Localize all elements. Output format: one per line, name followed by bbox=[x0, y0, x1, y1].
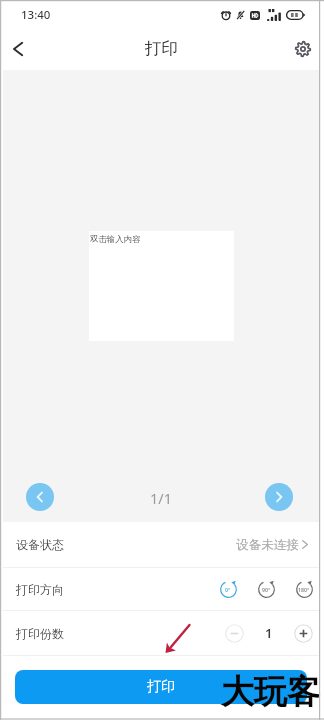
staticText: 大玩客 bbox=[221, 671, 320, 713]
button[interactable]: Rotate 90° bbox=[256, 579, 276, 599]
button[interactable]: 打印份数 bbox=[3, 611, 319, 655]
button[interactable]: Rotate 180° bbox=[294, 579, 314, 599]
button[interactable]: 打印方向 bbox=[3, 568, 319, 610]
staticText: 双击输入内容 bbox=[90, 234, 141, 245]
staticText: 打印份数 bbox=[16, 626, 64, 641]
staticText: 设备状态 bbox=[16, 537, 64, 552]
button[interactable]: Rotate 0° bbox=[218, 579, 238, 599]
button[interactable]: Decrease copies bbox=[225, 624, 244, 643]
staticText: 设备未连接 bbox=[236, 537, 299, 553]
button[interactable]: Settings bbox=[289, 35, 317, 63]
button[interactable]: Increase copies bbox=[294, 624, 313, 643]
button[interactable]: Back bbox=[3, 34, 33, 64]
button[interactable]: 打印 bbox=[15, 670, 307, 704]
staticText: 打印方向 bbox=[16, 582, 64, 597]
staticText: 90° bbox=[262, 586, 271, 593]
button[interactable]: 双击输入内容 bbox=[89, 231, 234, 341]
staticText: 0° bbox=[225, 586, 231, 593]
staticText: 180° bbox=[298, 586, 310, 593]
button[interactable]: 设备状态 bbox=[3, 522, 319, 567]
staticText: 打印 bbox=[145, 38, 178, 59]
button[interactable]: Previous page bbox=[26, 483, 54, 511]
button[interactable]: Next page bbox=[265, 483, 293, 511]
staticText: 打印 bbox=[147, 678, 175, 696]
staticText: 13:40 bbox=[21, 7, 51, 23]
staticText: 1 bbox=[265, 624, 273, 642]
staticText: 1/1 bbox=[150, 488, 172, 508]
